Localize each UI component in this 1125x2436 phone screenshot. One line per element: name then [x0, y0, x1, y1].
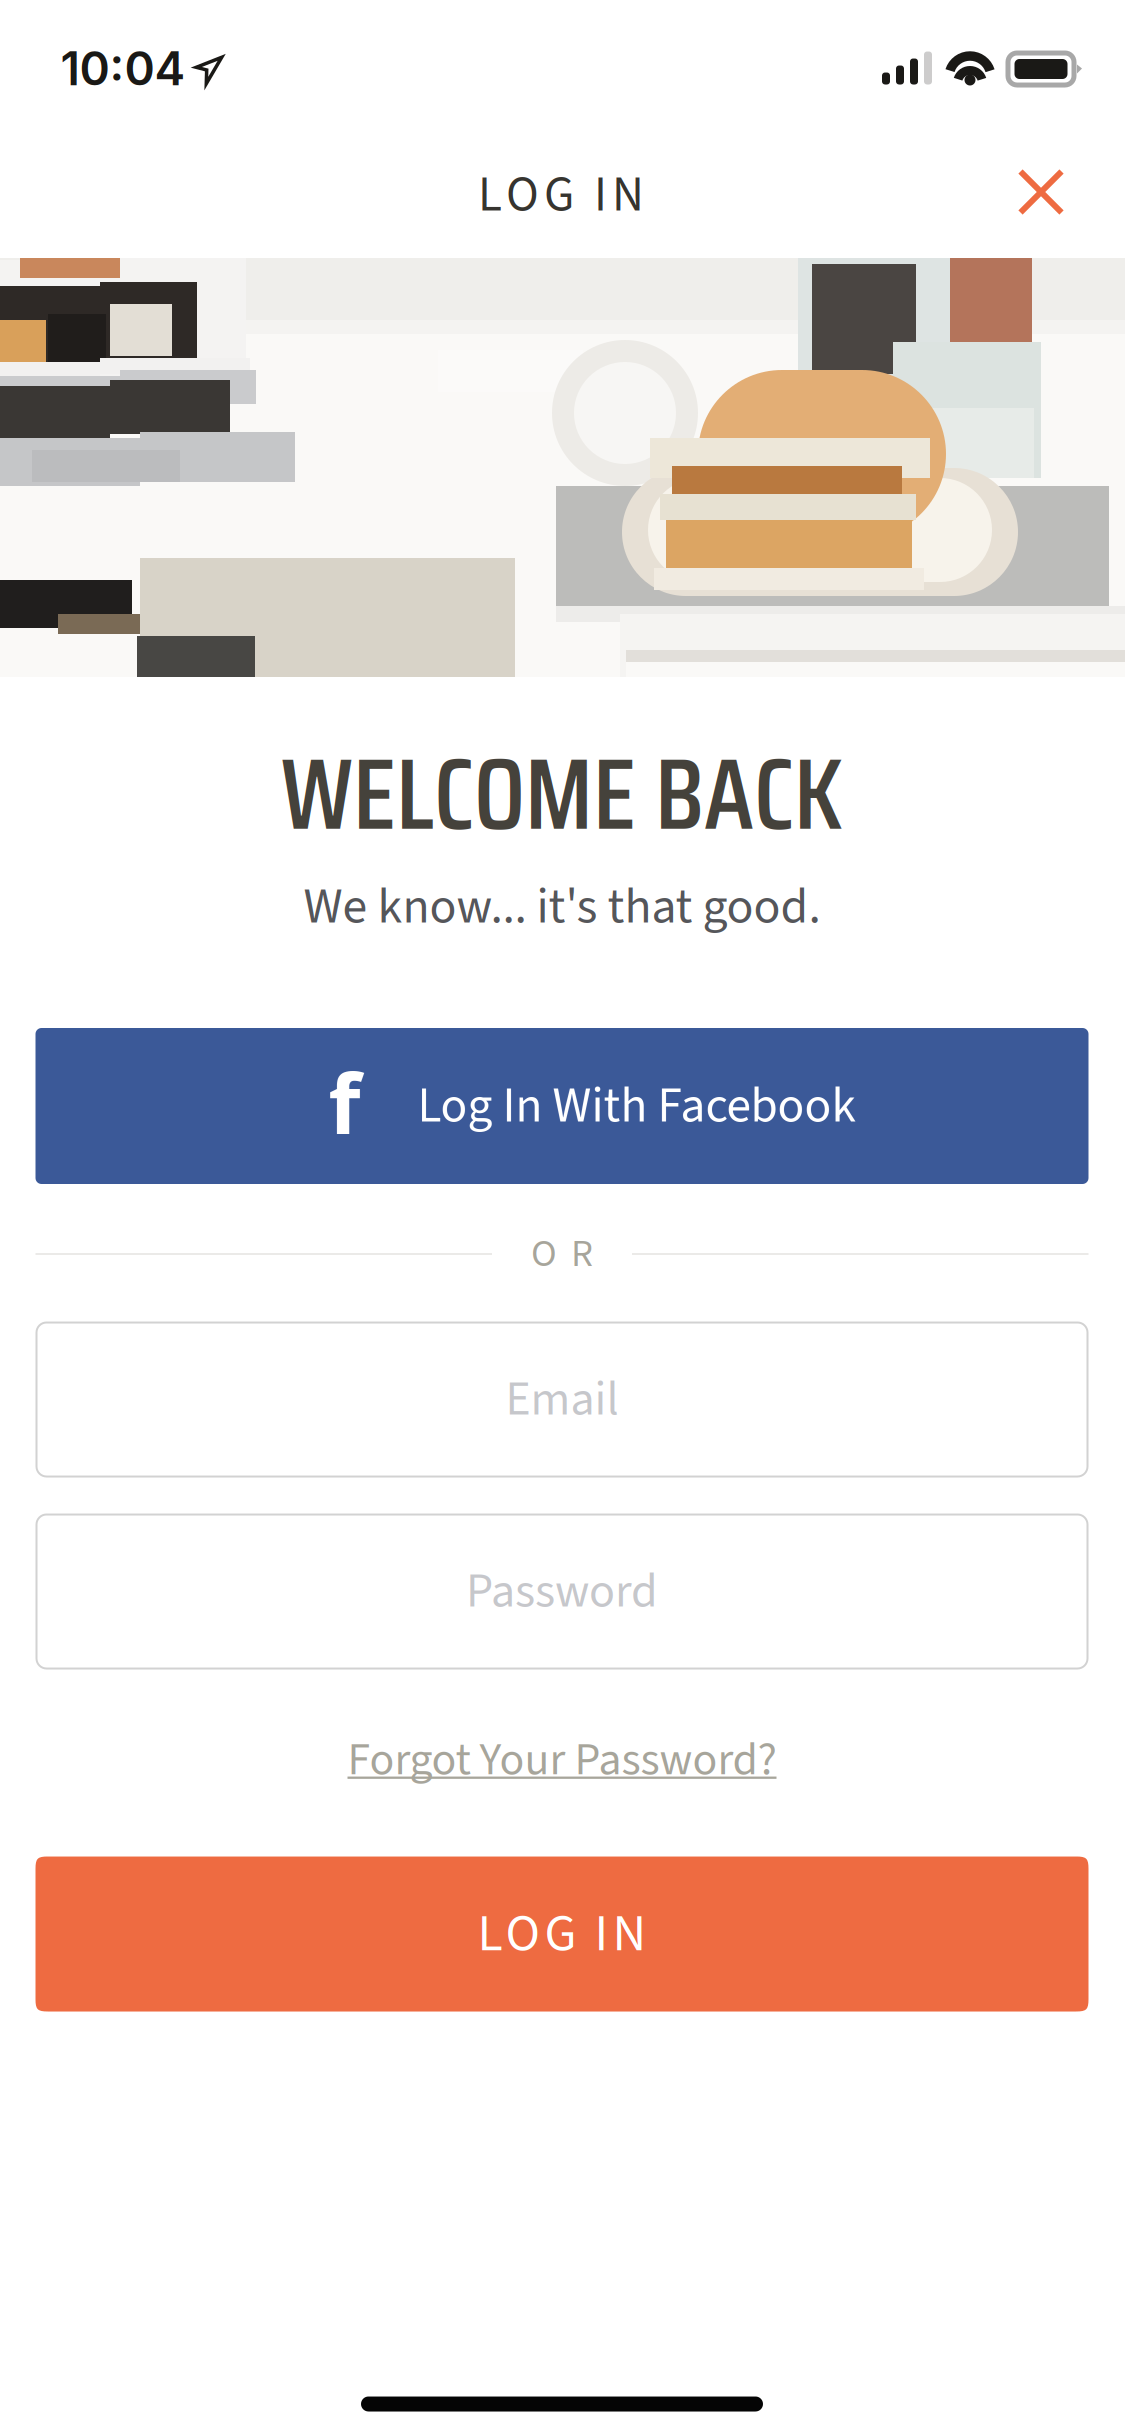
staticText: Password [466, 1557, 658, 1626]
button[interactable]: f [35, 1028, 1088, 1184]
staticText: Forgot Your Password? [347, 1727, 776, 1792]
staticText: f [328, 1046, 360, 1158]
staticText: 10:04 [60, 41, 185, 96]
staticText: LOG IN [478, 160, 644, 230]
staticText: Email [505, 1365, 618, 1434]
button[interactable]: Close [986, 137, 1096, 247]
staticText: LOG IN [477, 1897, 646, 1971]
staticText: WELCOME BACK [281, 715, 843, 873]
staticText: Log In With Facebook [417, 1071, 855, 1141]
staticText: O R [531, 1226, 593, 1282]
button[interactable]: LOG IN [35, 1856, 1088, 2011]
staticText: We know... it's that good. [303, 872, 820, 942]
button[interactable]: Forgot Your Password? [339, 1715, 784, 1804]
button[interactable]: Password [36, 1514, 1087, 1668]
button[interactable]: Email [36, 1322, 1087, 1476]
